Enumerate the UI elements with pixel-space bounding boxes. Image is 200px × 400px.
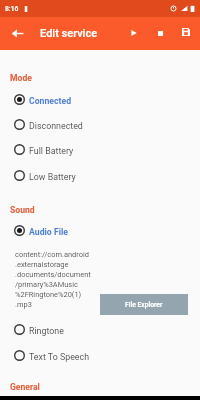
button[interactable]: Audio File [0,218,200,243]
staticText: Ringtone [29,326,64,336]
button[interactable]: Save [174,20,198,44]
staticText: Connected [29,96,72,106]
button[interactable]: Ringtone [0,317,200,342]
button[interactable]: Stop [148,21,172,45]
staticText: Sound [10,205,35,215]
staticText: Low Battery [29,172,76,182]
staticText: Edit service [40,27,98,40]
button[interactable]: Text To Speech [0,343,200,368]
button[interactable]: File Explorer [100,294,188,315]
button[interactable]: Back [5,21,29,45]
button[interactable]: Connected [0,87,200,112]
staticText: General [10,382,40,392]
button[interactable]: Full Battery [0,137,200,162]
staticText: content://com.android .externalstorage .… [15,250,91,309]
staticText: File Explorer [125,301,163,309]
button[interactable]: Disconnected [0,112,200,137]
staticText: Text To Speech [29,352,90,362]
staticText: 8:16 [5,5,19,13]
button[interactable]: Play [122,21,146,45]
button[interactable]: Low Battery [0,163,200,188]
staticText: Audio File [29,227,69,237]
staticText: Full Battery [29,146,74,156]
staticText: Mode [10,73,32,83]
staticText: Disconnected [29,121,83,131]
